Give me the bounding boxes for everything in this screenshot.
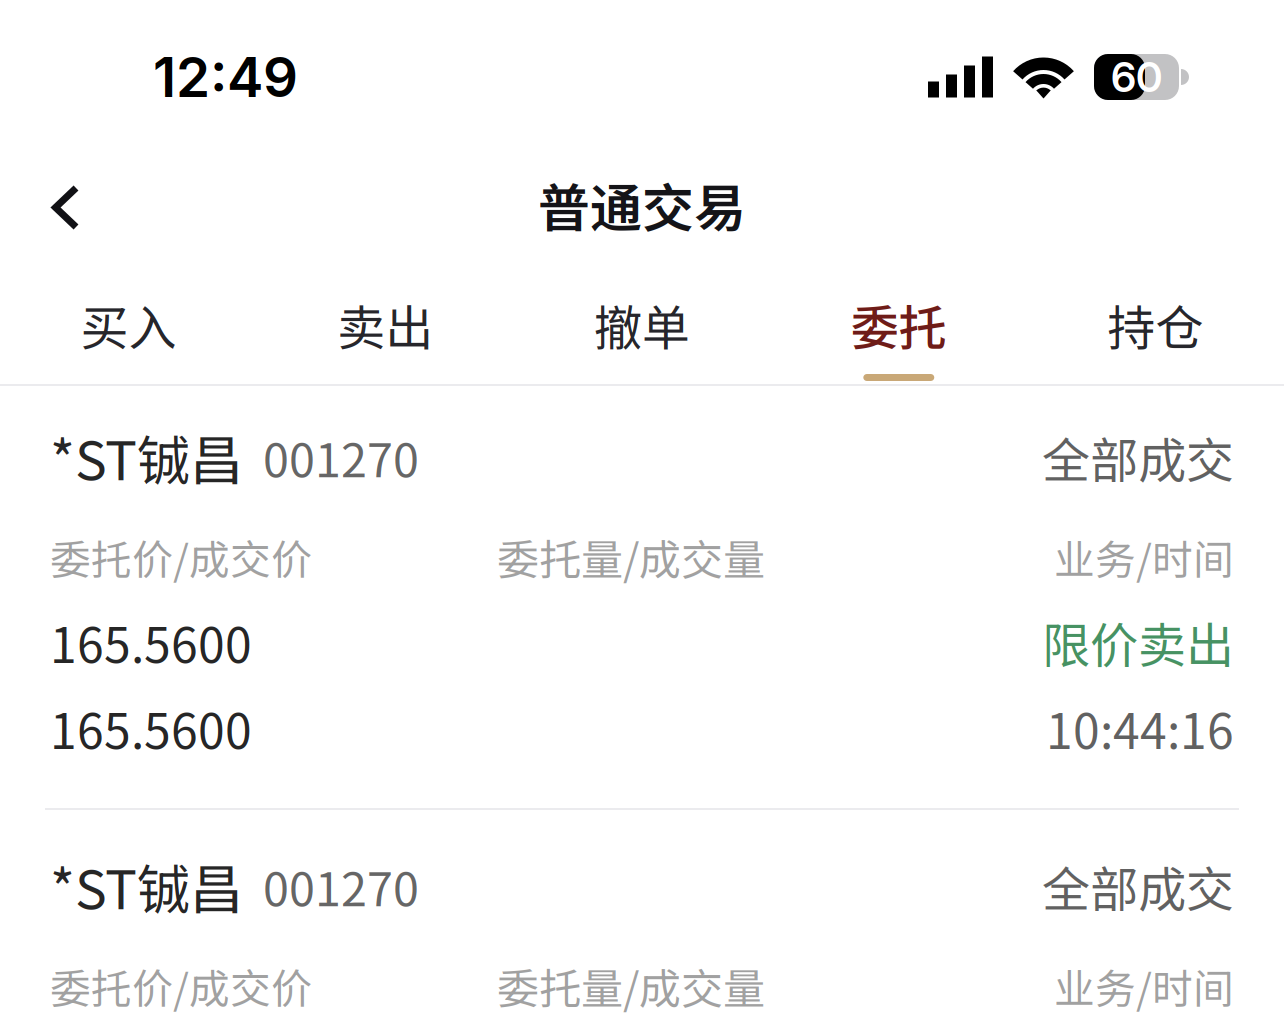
staticText: 委托 — [851, 290, 947, 359]
staticText: 业务/时间 — [1054, 528, 1234, 586]
button[interactable]: 委托 — [770, 297, 1027, 384]
staticText: 委托价/成交价 — [50, 528, 312, 586]
button[interactable]: *ST铖昌 — [0, 386, 1284, 808]
staticText: 卖出 — [337, 290, 433, 359]
staticText: *ST铖昌 — [50, 418, 243, 496]
staticText: 10:44:16 — [1046, 693, 1234, 763]
staticText: 001270 — [263, 852, 419, 920]
button[interactable]: 持仓 — [1027, 297, 1284, 384]
staticText: *ST铖昌 — [50, 847, 243, 925]
button[interactable]: *ST铖昌 — [0, 810, 1284, 1017]
button[interactable]: 撤单 — [514, 297, 770, 384]
staticText: 业务/时间 — [1054, 957, 1234, 1015]
staticText: 委托量/成交量 — [497, 527, 765, 587]
staticText: 165.5600 — [50, 693, 252, 763]
staticText: 165.5600 — [50, 607, 252, 677]
staticText: 普通交易 — [538, 167, 746, 242]
staticText: 委托价/成交价 — [50, 957, 312, 1015]
staticText: 001270 — [263, 423, 419, 491]
staticText: 全部成交 — [1042, 851, 1234, 921]
staticText: 撤单 — [594, 290, 690, 359]
staticText: 12:49 — [153, 44, 298, 110]
staticText: 60 — [1111, 52, 1162, 102]
staticText: 全部成交 — [1042, 422, 1234, 492]
button[interactable]: 卖出 — [257, 297, 514, 384]
button[interactable]: 返回 — [0, 151, 115, 299]
staticText: 委托量/成交量 — [497, 956, 765, 1016]
staticText: 限价卖出 — [1042, 607, 1234, 677]
staticText: 买入 — [80, 290, 176, 359]
button[interactable]: 买入 — [0, 297, 257, 384]
staticText: 持仓 — [1108, 290, 1204, 359]
